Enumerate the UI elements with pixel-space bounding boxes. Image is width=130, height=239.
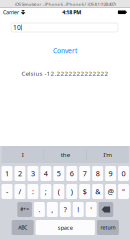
staticText: 4:18 PM <box>62 9 81 16</box>
button[interactable]: , <box>47 202 58 217</box>
staticText: iOS Simulator - iPhone 6 - iPhone 6 / iO… <box>14 1 115 7</box>
button[interactable]: @ <box>105 184 116 199</box>
staticText: ABC <box>18 224 27 231</box>
button[interactable]: 4 <box>40 166 51 181</box>
button[interactable]: I'm <box>87 146 129 163</box>
button[interactable]: " <box>118 184 129 199</box>
staticText: space <box>58 224 73 231</box>
staticText: : <box>32 187 34 196</box>
staticText: @ <box>108 187 114 196</box>
staticText: 10 <box>13 23 21 32</box>
staticText: return <box>100 224 115 231</box>
staticText: 6 <box>70 169 74 178</box>
button[interactable]: 7 <box>79 166 90 181</box>
staticText: 2 <box>18 169 22 178</box>
button[interactable]: $ <box>79 184 90 199</box>
button[interactable]: 6 <box>66 166 77 181</box>
staticText: 1 <box>5 169 9 178</box>
staticText: $ <box>83 187 87 196</box>
staticText: . <box>38 205 40 214</box>
button[interactable]: . <box>34 202 45 217</box>
button[interactable]: ! <box>73 202 84 217</box>
staticText: ) <box>71 187 73 196</box>
button[interactable]: ; <box>40 184 51 199</box>
button[interactable]: 3 <box>27 166 38 181</box>
button[interactable]: 5 <box>53 166 64 181</box>
staticText: I <box>22 150 24 159</box>
staticText: 0 <box>122 169 126 178</box>
staticText: / <box>18 187 21 196</box>
staticText: Celsius -12.2222222222222 <box>21 69 108 77</box>
staticText: ! <box>77 205 79 214</box>
staticText: Carrier <box>3 9 19 16</box>
button[interactable]: & <box>92 184 103 199</box>
button[interactable]: I <box>2 146 44 163</box>
button[interactable]: ? <box>60 202 71 217</box>
button[interactable]: 9 <box>105 166 116 181</box>
button[interactable]: the <box>44 146 86 163</box>
staticText: " <box>122 187 125 196</box>
staticText: ? <box>64 205 67 214</box>
button[interactable]: 8 <box>92 166 103 181</box>
button[interactable]: 0 <box>118 166 129 181</box>
button[interactable]: ) <box>66 184 77 199</box>
button[interactable]: return <box>97 220 119 235</box>
staticText: & <box>95 187 100 196</box>
button[interactable]: / <box>14 184 25 199</box>
button[interactable]: #+= <box>17 202 32 217</box>
staticText: 9 <box>109 169 113 178</box>
staticText: ; <box>45 187 47 196</box>
staticText: Convert <box>53 46 77 55</box>
button[interactable]: Convert <box>53 46 77 55</box>
button[interactable]: ABC <box>12 220 34 235</box>
button[interactable]: - <box>1 184 12 199</box>
staticText: 3 <box>31 169 35 178</box>
staticText: the <box>61 150 70 159</box>
staticText: ' <box>90 205 92 214</box>
button[interactable]: : <box>27 184 38 199</box>
staticText: I'm <box>103 150 112 159</box>
button[interactable]: space <box>36 220 95 235</box>
staticText: ( <box>58 187 60 196</box>
button[interactable]: ( <box>53 184 64 199</box>
staticText: , <box>51 205 53 214</box>
staticText: #+= <box>20 206 29 213</box>
button[interactable]: ' <box>86 202 97 217</box>
button[interactable]: Delete <box>99 202 113 217</box>
staticText: 8 <box>96 169 100 178</box>
button[interactable]: 10 <box>11 23 118 32</box>
button[interactable]: 2 <box>14 166 25 181</box>
staticText: 5 <box>57 169 61 178</box>
button[interactable]: 1 <box>1 166 12 181</box>
staticText: 4 <box>44 169 48 178</box>
staticText: 7 <box>83 169 87 178</box>
staticText: - <box>6 187 8 196</box>
